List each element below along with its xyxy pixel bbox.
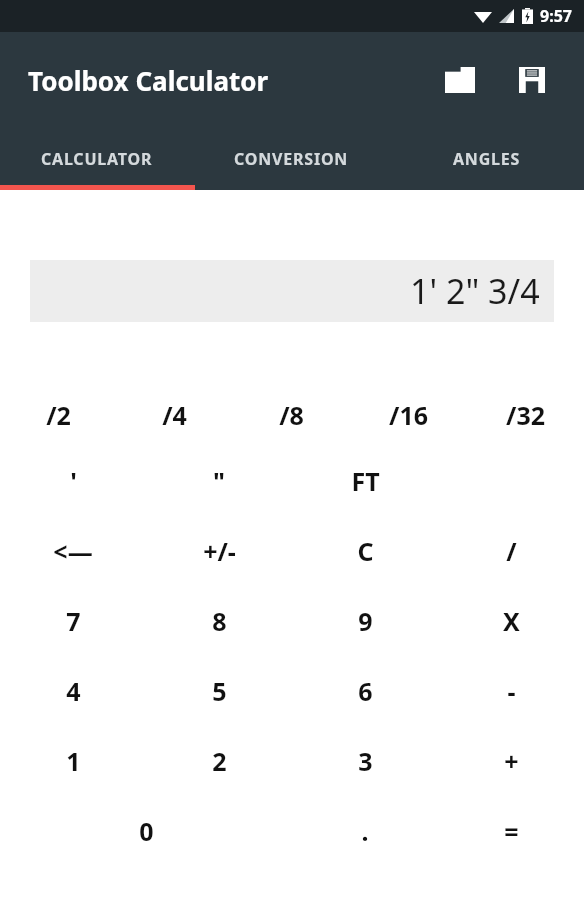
button[interactable]: /4 (116, 384, 233, 446)
button[interactable]: - (438, 656, 584, 726)
button[interactable]: Save (504, 52, 560, 108)
staticText: X (503, 604, 520, 638)
staticText: CONVERSION (234, 148, 349, 170)
staticText: + (504, 744, 519, 778)
staticText: 3 (358, 744, 373, 778)
staticText: +/- (203, 534, 236, 568)
staticText: ANGLES (453, 148, 521, 170)
staticText: 6 (358, 674, 373, 708)
staticText: /8 (279, 398, 304, 432)
staticText: /16 (389, 398, 428, 432)
staticText: 1 (66, 744, 81, 778)
button[interactable]: C (292, 516, 438, 586)
button[interactable]: /16 (350, 384, 467, 446)
button[interactable]: CONVERSION (194, 128, 389, 190)
button[interactable]: / (438, 516, 584, 586)
button[interactable]: Open (432, 52, 488, 108)
staticText: <— (53, 534, 93, 568)
button[interactable]: /8 (233, 384, 350, 446)
staticText: 0 (139, 814, 154, 848)
staticText: 7 (66, 604, 81, 638)
staticText: 8 (212, 604, 227, 638)
staticText: 1' 2" 3/4 (410, 268, 540, 314)
button[interactable]: FT (292, 446, 438, 516)
staticText: 9:57 (540, 5, 572, 27)
button[interactable]: 9 (292, 586, 438, 656)
button[interactable]: 8 (146, 586, 292, 656)
staticText: ' (70, 464, 77, 498)
staticText: " (213, 464, 225, 498)
staticText: 4 (66, 674, 81, 708)
button[interactable]: CALCULATOR (0, 128, 194, 190)
staticText: = (504, 814, 519, 848)
staticText: . (361, 814, 369, 848)
staticText: /2 (46, 398, 71, 432)
staticText: 9 (358, 604, 373, 638)
button[interactable]: 1 (0, 726, 146, 796)
button[interactable]: 7 (0, 586, 146, 656)
button[interactable]: 5 (146, 656, 292, 726)
button[interactable]: 3 (292, 726, 438, 796)
button[interactable]: 2 (146, 726, 292, 796)
button[interactable]: X (438, 586, 584, 656)
button[interactable]: 6 (292, 656, 438, 726)
staticText: CALCULATOR (41, 148, 153, 170)
staticText: - (507, 674, 516, 708)
button[interactable]: +/- (146, 516, 292, 586)
button[interactable]: = (438, 796, 584, 866)
staticText: /4 (162, 398, 187, 432)
button[interactable]: . (292, 796, 438, 866)
button[interactable]: + (438, 726, 584, 796)
button[interactable]: <— (0, 516, 146, 586)
staticText: Toolbox Calculator (28, 63, 269, 98)
button[interactable]: ' (0, 446, 146, 516)
staticText: /32 (506, 398, 545, 432)
button[interactable]: /2 (0, 384, 116, 446)
staticText: 5 (212, 674, 227, 708)
button[interactable]: /32 (467, 384, 584, 446)
staticText: / (506, 534, 517, 568)
button[interactable]: 4 (0, 656, 146, 726)
button[interactable]: 0 (0, 796, 292, 866)
button[interactable]: ANGLES (389, 128, 584, 190)
button[interactable]: " (146, 446, 292, 516)
staticText: FT (351, 464, 380, 498)
staticText: C (357, 534, 374, 568)
staticText: 2 (212, 744, 227, 778)
